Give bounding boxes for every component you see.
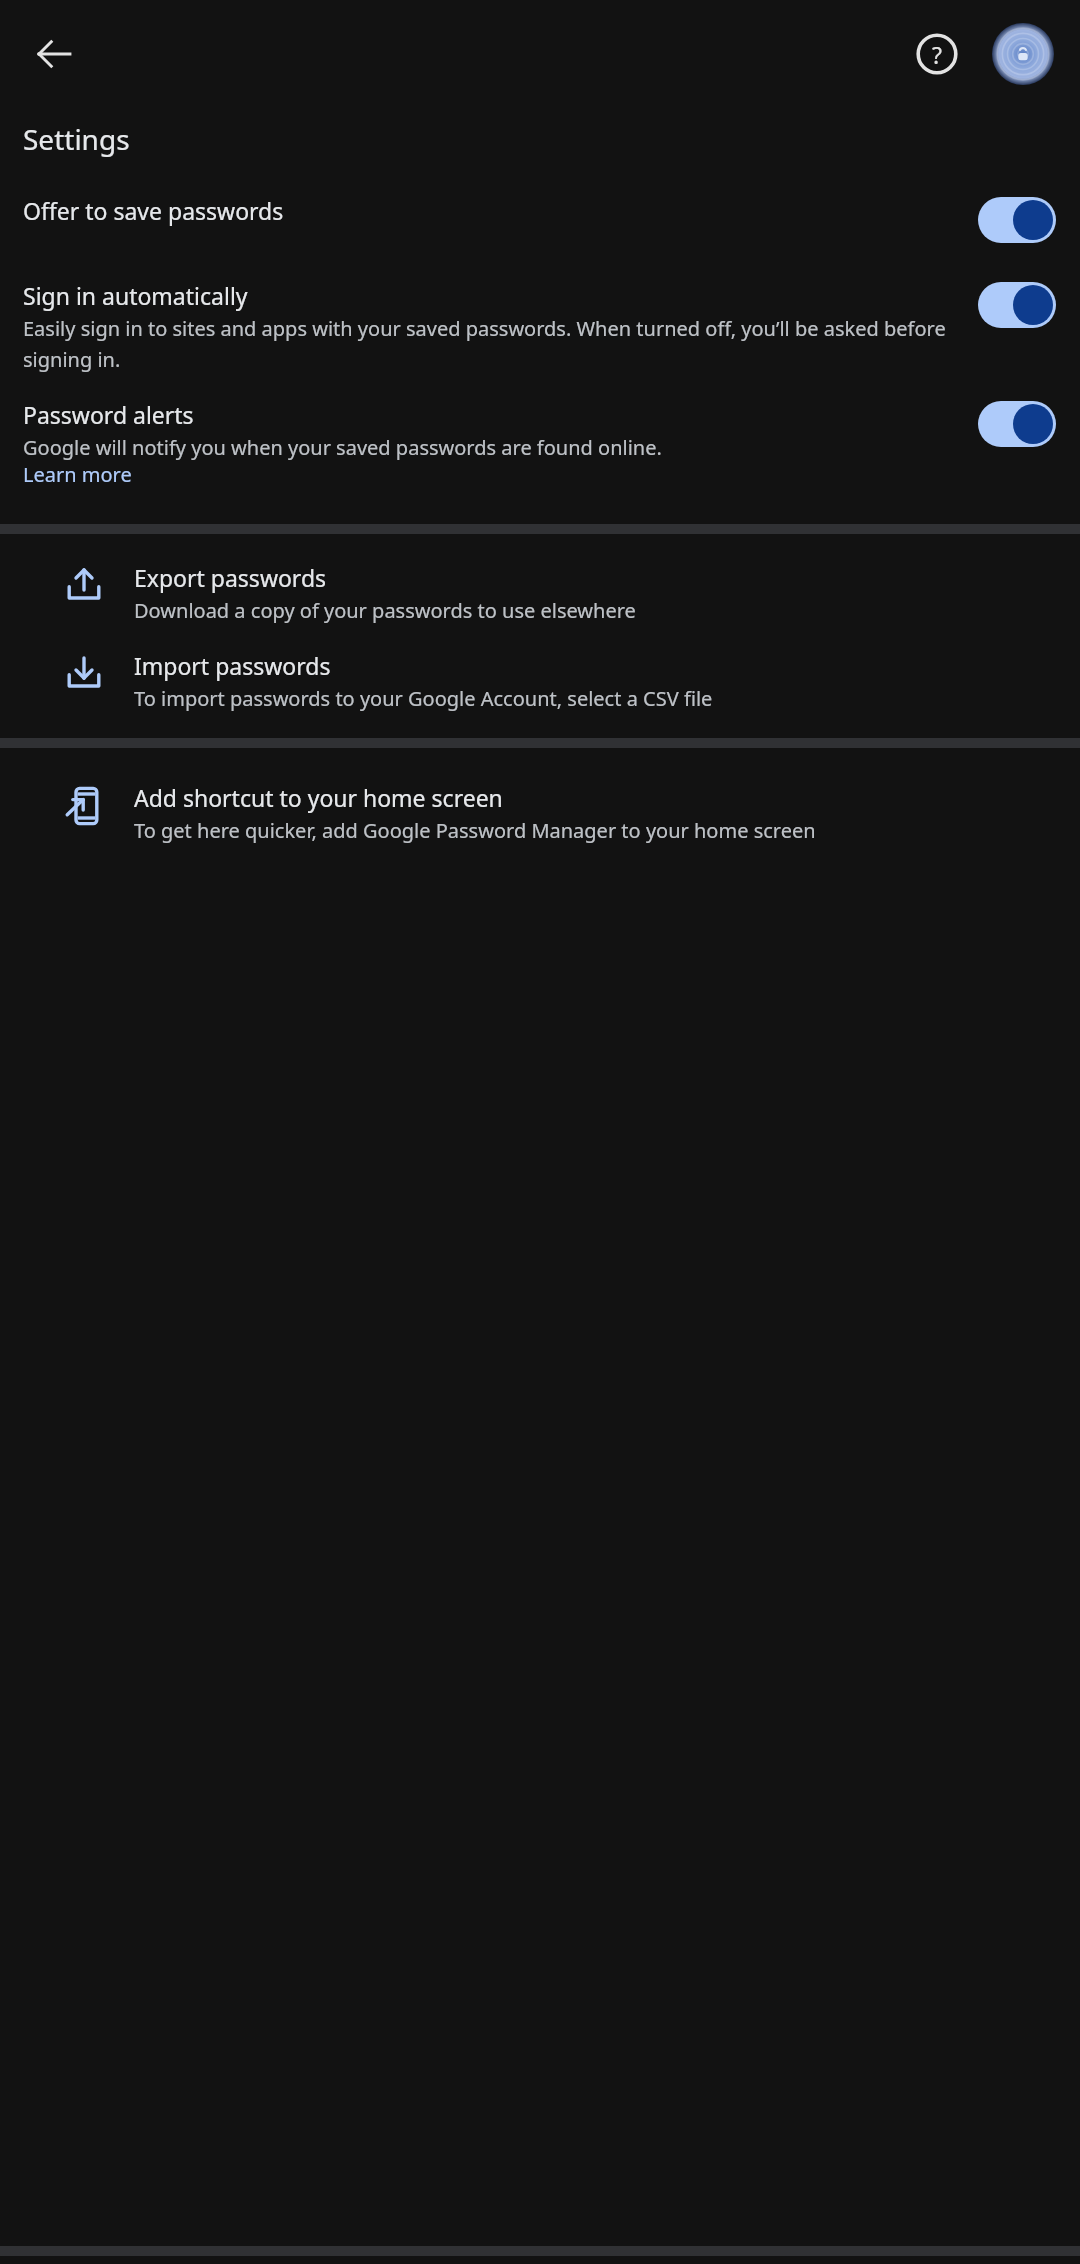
button[interactable]: Toggle on [978,197,1056,243]
staticText: Add shortcut to your home screen [134,782,503,813]
button[interactable]: Export passwords [0,562,1080,624]
staticText: Settings [23,120,130,158]
button[interactable]: Sign in automatically [0,272,1080,379]
button[interactable]: Import passwords [0,650,1080,712]
button[interactable]: Toggle on [978,282,1056,328]
staticText: Export passwords [134,562,327,593]
button[interactable]: Account [984,15,1062,93]
staticText: ? [932,39,942,70]
button[interactable]: Back [18,18,90,90]
button[interactable]: Learn more [23,461,132,488]
staticText: Download a copy of your passwords to use… [134,597,636,624]
button[interactable]: Offer to save passwords [0,187,1080,249]
button[interactable]: Password alerts [0,391,1080,494]
button[interactable]: Add shortcut to your home screen [0,782,1080,844]
staticText: Offer to save passwords [23,195,284,226]
staticText: Import passwords [134,650,331,681]
button[interactable]: Help [898,15,976,93]
staticText: Google will notify you when your saved p… [23,434,662,461]
staticText: To get here quicker, add Google Password… [134,817,816,844]
staticText: Sign in automatically [23,280,248,311]
staticText: To import passwords to your Google Accou… [134,685,713,712]
staticText: Easily sign in to sites and apps with yo… [23,315,962,373]
staticText: Password alerts [23,399,194,430]
button[interactable]: Toggle on [978,401,1056,447]
